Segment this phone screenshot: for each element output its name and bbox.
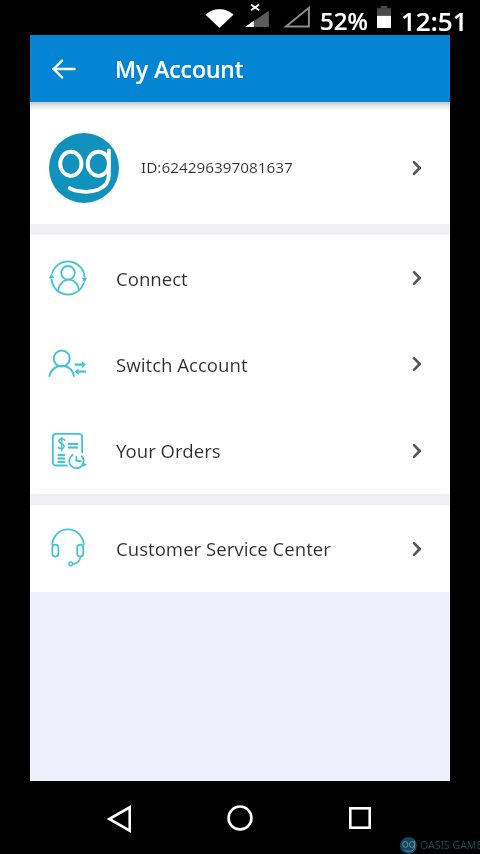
- staticText: Customer Service Center: [116, 536, 331, 561]
- staticText: Connect: [116, 266, 188, 291]
- button[interactable]: Switch Account: [30, 321, 450, 407]
- button[interactable]: Connect: [30, 235, 450, 321]
- button[interactable]: Customer Service Center: [30, 505, 450, 592]
- button[interactable]: Recent apps: [336, 794, 384, 842]
- button[interactable]: Back: [95, 795, 143, 843]
- staticText: OASIS GAMES: [420, 838, 480, 852]
- staticText: Switch Account: [116, 352, 248, 377]
- button[interactable]: Home: [216, 794, 264, 842]
- staticText: 12:51: [401, 3, 468, 38]
- button[interactable]: ID:624296397081637: [30, 102, 450, 224]
- staticText: My Account: [115, 53, 244, 84]
- button[interactable]: Back: [42, 47, 86, 91]
- button[interactable]: Your Orders: [30, 407, 450, 494]
- staticText: Your Orders: [116, 438, 221, 463]
- staticText: 52%: [320, 4, 368, 37]
- staticText: ID:624296397081637: [141, 157, 293, 178]
